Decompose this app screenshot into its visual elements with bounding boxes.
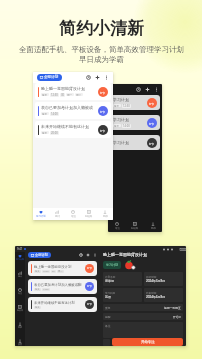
staticText: 2024年3月8日 [146, 279, 166, 283]
button[interactable]: Add plan [95, 75, 100, 80]
staticText: 周一 [58, 270, 63, 273]
staticText: 打卡 [149, 122, 155, 125]
button[interactable]: 知识库 [15, 305, 25, 312]
staticText: 计划名称 [105, 275, 116, 278]
staticText: 14:00 [51, 112, 58, 116]
button[interactable]: 我的 [144, 220, 162, 232]
button[interactable]: 我的 [15, 322, 25, 329]
staticText: 每天 [35, 306, 40, 309]
staticText: 专注 [18, 292, 22, 295]
button[interactable]: 我的 [97, 208, 113, 220]
button[interactable]: 全部计划 [37, 74, 62, 81]
button[interactable]: 学习计划 [110, 115, 160, 130]
staticText: 14:00 [43, 288, 49, 291]
button[interactable]: More options [93, 253, 97, 257]
staticText: 英语 [105, 295, 111, 299]
staticText: 打卡 [87, 285, 92, 288]
staticText: 开始专注 [141, 340, 155, 344]
other: Timer [86, 75, 91, 80]
staticText: 打卡 [149, 102, 155, 105]
button[interactable]: 学习计划 [15, 254, 25, 261]
button[interactable]: 打卡 [98, 106, 108, 116]
button[interactable]: 晚上睡一觉国能背没计划 [35, 83, 111, 100]
staticText: 每天 [35, 270, 40, 273]
staticText: 背单词 [105, 279, 114, 283]
button[interactable]: 学习计划 [103, 261, 121, 269]
button[interactable]: 设置 [15, 339, 25, 346]
staticText: 晚上睡一觉国能背没计划 [41, 86, 85, 91]
staticText: 周一 [67, 93, 73, 96]
button[interactable]: More options [154, 87, 159, 92]
button[interactable]: Timer [79, 253, 83, 257]
staticText: 表自己要加考计划加入懒被或翻翻 [41, 105, 96, 110]
staticText: 打卡 [87, 267, 92, 270]
staticText: 晚上睡一觉国能背没计划 [103, 252, 147, 257]
button[interactable]: 知识库 [81, 208, 97, 220]
staticText: 20:00 [51, 131, 58, 135]
staticText: 打卡 [87, 303, 92, 306]
button[interactable]: 专注 [15, 288, 25, 295]
staticText: 统计 [55, 215, 60, 218]
staticText: 专注 [71, 215, 76, 218]
button[interactable]: Timer [136, 87, 141, 92]
button[interactable]: 学习计划 [110, 135, 160, 150]
button[interactable]: 学习计划 [110, 95, 160, 110]
staticText: 全面适配手机、平板设备，简单高效管理学习计划 [19, 45, 184, 54]
button[interactable]: 表自己要加考计划加入懒被或翻翻 [35, 102, 111, 119]
button[interactable]: 专注 [65, 208, 81, 220]
staticText: 每天 [42, 112, 48, 115]
staticText: 知识库 [131, 227, 139, 230]
button[interactable]: 知识库 [126, 220, 144, 232]
staticText: 全部计划 [35, 253, 48, 257]
button[interactable]: Timer [86, 75, 91, 80]
staticText: 知识库 [85, 215, 93, 218]
button[interactable]: Add plan [145, 87, 150, 92]
other: Add plan [86, 253, 90, 257]
staticText: 30 [52, 270, 55, 273]
button[interactable]: 开始专注 [112, 338, 183, 346]
other: Add plan [95, 75, 100, 80]
button[interactable]: More options [104, 75, 109, 80]
button[interactable]: 未来开始继续不能有这计划 [28, 297, 97, 312]
button[interactable]: 专注 [108, 220, 126, 232]
button[interactable]: 打卡 [98, 125, 108, 135]
staticText: 开始时间 [146, 275, 157, 278]
staticText: 表自己要加考计划加入懒被或翻 [34, 283, 82, 287]
staticText: 12:30 [43, 270, 49, 273]
staticText: 每天 [35, 288, 40, 291]
staticText: 知识库 [17, 309, 23, 312]
staticText: 每天 [114, 124, 120, 127]
staticText: 打卡 [100, 91, 106, 94]
staticText: 未来开始继续不能有这计划 [34, 301, 75, 305]
button[interactable]: 表自己要加考计划加入懒被或翻 [28, 279, 97, 294]
staticText: 我的 [18, 326, 22, 329]
staticText: 结束时间 [146, 291, 157, 294]
staticText: 打卡 [100, 129, 106, 132]
staticText: 每天 [42, 93, 48, 96]
button[interactable]: 全部计划 [28, 252, 51, 258]
staticText: 学习计划 [113, 97, 129, 102]
button[interactable]: Add plan [86, 253, 90, 257]
staticText: 设置 [18, 343, 22, 346]
staticText: 周三 [76, 93, 82, 96]
button[interactable]: 统计 [15, 271, 25, 278]
button[interactable]: 晚上睡一觉国能背没计划 [28, 261, 97, 276]
staticText: 统计 [18, 275, 22, 278]
other: Timer [79, 253, 83, 257]
button[interactable]: 统计 [49, 208, 65, 220]
staticText: 未来开始继续不能有这计划 [41, 124, 89, 129]
staticText: 30 [61, 93, 64, 97]
staticText: 备注 [105, 324, 111, 328]
staticText: 我的 [103, 215, 108, 218]
button[interactable]: 打卡 [98, 87, 108, 97]
other: Pomodoro [124, 259, 135, 270]
staticText: 全部计划 [44, 75, 59, 80]
button[interactable]: 学习计划 [33, 208, 49, 220]
button[interactable]: 未来开始继续不能有这计划 [35, 121, 111, 138]
staticText: 12:30 [51, 93, 58, 97]
staticText: 14:00 [123, 124, 130, 128]
staticText: 早日成为学霸 [79, 55, 124, 64]
staticText: 简约小清新 [59, 18, 144, 39]
staticText: 提醒 [105, 315, 111, 319]
